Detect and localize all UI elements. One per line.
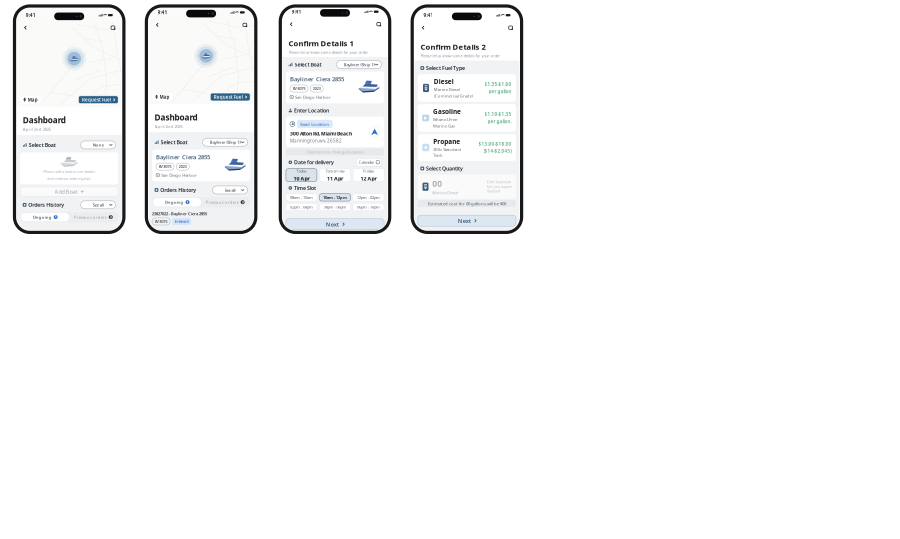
- staticText: San Diego Harbor: [161, 172, 197, 178]
- staticText: Marine Diesel: [432, 190, 458, 195]
- staticText: 0: [110, 215, 112, 219]
- staticText: Estimated cost for 00 gallons will be $0…: [428, 201, 506, 206]
- staticText: 12pm - 02pm: [357, 195, 380, 200]
- staticText: Click here to change location: [305, 149, 364, 155]
- staticText: BV 8075: [159, 164, 172, 169]
- button[interactable]: 04pm - 06pm: [319, 203, 350, 211]
- staticText: 00: [432, 178, 442, 189]
- button[interactable]: 12pm - 02pm: [353, 194, 384, 201]
- staticText: See all: [225, 187, 236, 193]
- staticText: Map: [160, 94, 170, 100]
- staticText: Mannington,wv, 26582: [290, 138, 342, 144]
- button[interactable]: Notifications: [375, 20, 382, 28]
- button[interactable]: 08am - 10am: [286, 194, 317, 201]
- staticText: Please let us know some details for your…: [288, 49, 368, 55]
- staticText: 1: [55, 215, 57, 219]
- staticText: 9:41: [291, 8, 301, 15]
- staticText: 2023: [179, 164, 187, 169]
- staticText: 11 Apr: [327, 175, 343, 182]
- staticText: 300 Alton Rd, Miami Beach: [290, 130, 352, 137]
- staticText: Request Fuel: [82, 97, 111, 103]
- staticText: See all: [93, 202, 104, 208]
- button[interactable]: Diesel: [418, 74, 516, 102]
- button[interactable]: Map: [20, 96, 41, 103]
- button[interactable]: Bayliner (Ship 1): [203, 138, 248, 146]
- staticText: 04pm - 06pm: [323, 204, 346, 210]
- staticText: Diesel: [434, 77, 454, 86]
- staticText: Today: [296, 168, 306, 174]
- button[interactable]: Add Boat: [20, 187, 118, 196]
- staticText: Add Boat: [55, 188, 78, 195]
- button[interactable]: See all: [81, 201, 116, 209]
- button[interactable]: Back: [154, 21, 161, 29]
- staticText: Exact Location: [300, 121, 329, 127]
- staticText: $1.10-$1.35: [484, 111, 511, 117]
- button[interactable]: Gasoline: [418, 104, 516, 132]
- button[interactable]: Map: [152, 93, 173, 101]
- staticText: per gallon.: [487, 118, 511, 124]
- staticText: 1: [187, 200, 189, 204]
- button[interactable]: Calendar: [356, 158, 381, 166]
- staticText: Ethanol-Free: [433, 117, 457, 122]
- button[interactable]: Back: [22, 24, 29, 31]
- staticText: Confirm Details 1: [288, 38, 353, 49]
- button[interactable]: Click here to change location: [286, 148, 384, 155]
- staticText: per gallon: [488, 89, 511, 95]
- staticText: 2023: [313, 86, 321, 91]
- staticText: Bayliner (Ship 1): [210, 139, 241, 145]
- staticText: Propane: [433, 137, 460, 146]
- button[interactable]: Friday: [353, 169, 384, 182]
- button[interactable]: Today: [286, 169, 317, 182]
- staticText: (Commercial Grade): [434, 93, 473, 99]
- button[interactable]: Request Fuel: [210, 93, 250, 101]
- staticText: BV 8075: [292, 86, 305, 91]
- button[interactable]: Next: [418, 215, 516, 226]
- button[interactable]: Back: [419, 24, 427, 31]
- staticText: In transit: [175, 219, 189, 224]
- staticText: Calendar: [358, 160, 374, 165]
- staticText: $1.35-$1.60: [484, 81, 511, 87]
- staticText: A: [291, 122, 293, 126]
- staticText: Bayliner Ciera 2855: [156, 153, 210, 161]
- staticText: Select Boat: [294, 61, 321, 68]
- button[interactable]: Notifications: [507, 24, 514, 31]
- staticText: BV 8075: [155, 219, 168, 224]
- button[interactable]: 10am - 12pm: [319, 194, 350, 201]
- staticText: 20 lb Standard Tank: [433, 147, 461, 158]
- staticText: (Gallons): [487, 189, 500, 193]
- button[interactable]: 02pm - 04pm: [286, 203, 317, 211]
- button[interactable]: Bayliner (Ship 1): [336, 60, 381, 68]
- staticText: Confirm Details 2: [420, 42, 485, 52]
- staticText: Map: [28, 97, 38, 103]
- staticText: Marine Diesel: [434, 87, 460, 92]
- button[interactable]: 06pm - 10pm: [353, 203, 384, 211]
- staticText: Enter Location: [294, 107, 329, 114]
- button[interactable]: Previous orders: [69, 213, 117, 221]
- staticText: Friday: [363, 168, 374, 174]
- staticText: Previous orders: [74, 214, 107, 220]
- button[interactable]: Back: [287, 20, 295, 28]
- staticText: 9:41: [158, 9, 168, 16]
- button[interactable]: Next: [286, 219, 384, 230]
- staticText: 23827022 - Bayliner Ciera 2855: [152, 211, 207, 216]
- button[interactable]: Notifications: [109, 24, 117, 31]
- button[interactable]: Ongoing: [21, 213, 69, 221]
- staticText: Request Fuel: [214, 94, 243, 100]
- staticText: Orders History: [28, 201, 64, 208]
- button[interactable]: Tomorrow: [319, 169, 350, 182]
- button[interactable]: Notifications: [241, 21, 249, 29]
- staticText: Bayliner (Ship 1): [343, 62, 374, 67]
- staticText: Dashboard: [155, 112, 198, 123]
- button[interactable]: Request Fuel: [78, 96, 118, 104]
- button[interactable]: Previous orders: [201, 198, 249, 206]
- staticText: 9:41: [423, 12, 433, 18]
- staticText: $13.00-$18.00: [478, 141, 511, 147]
- button[interactable]: Propane: [418, 134, 516, 161]
- staticText: Select Boat: [29, 141, 56, 148]
- staticText: Time Slot: [294, 184, 316, 191]
- button[interactable]: None: [81, 141, 116, 149]
- button[interactable]: Ongoing: [153, 198, 201, 206]
- staticText: Orders History: [160, 186, 196, 193]
- staticText: None: [93, 142, 104, 148]
- button[interactable]: See all: [213, 186, 248, 194]
